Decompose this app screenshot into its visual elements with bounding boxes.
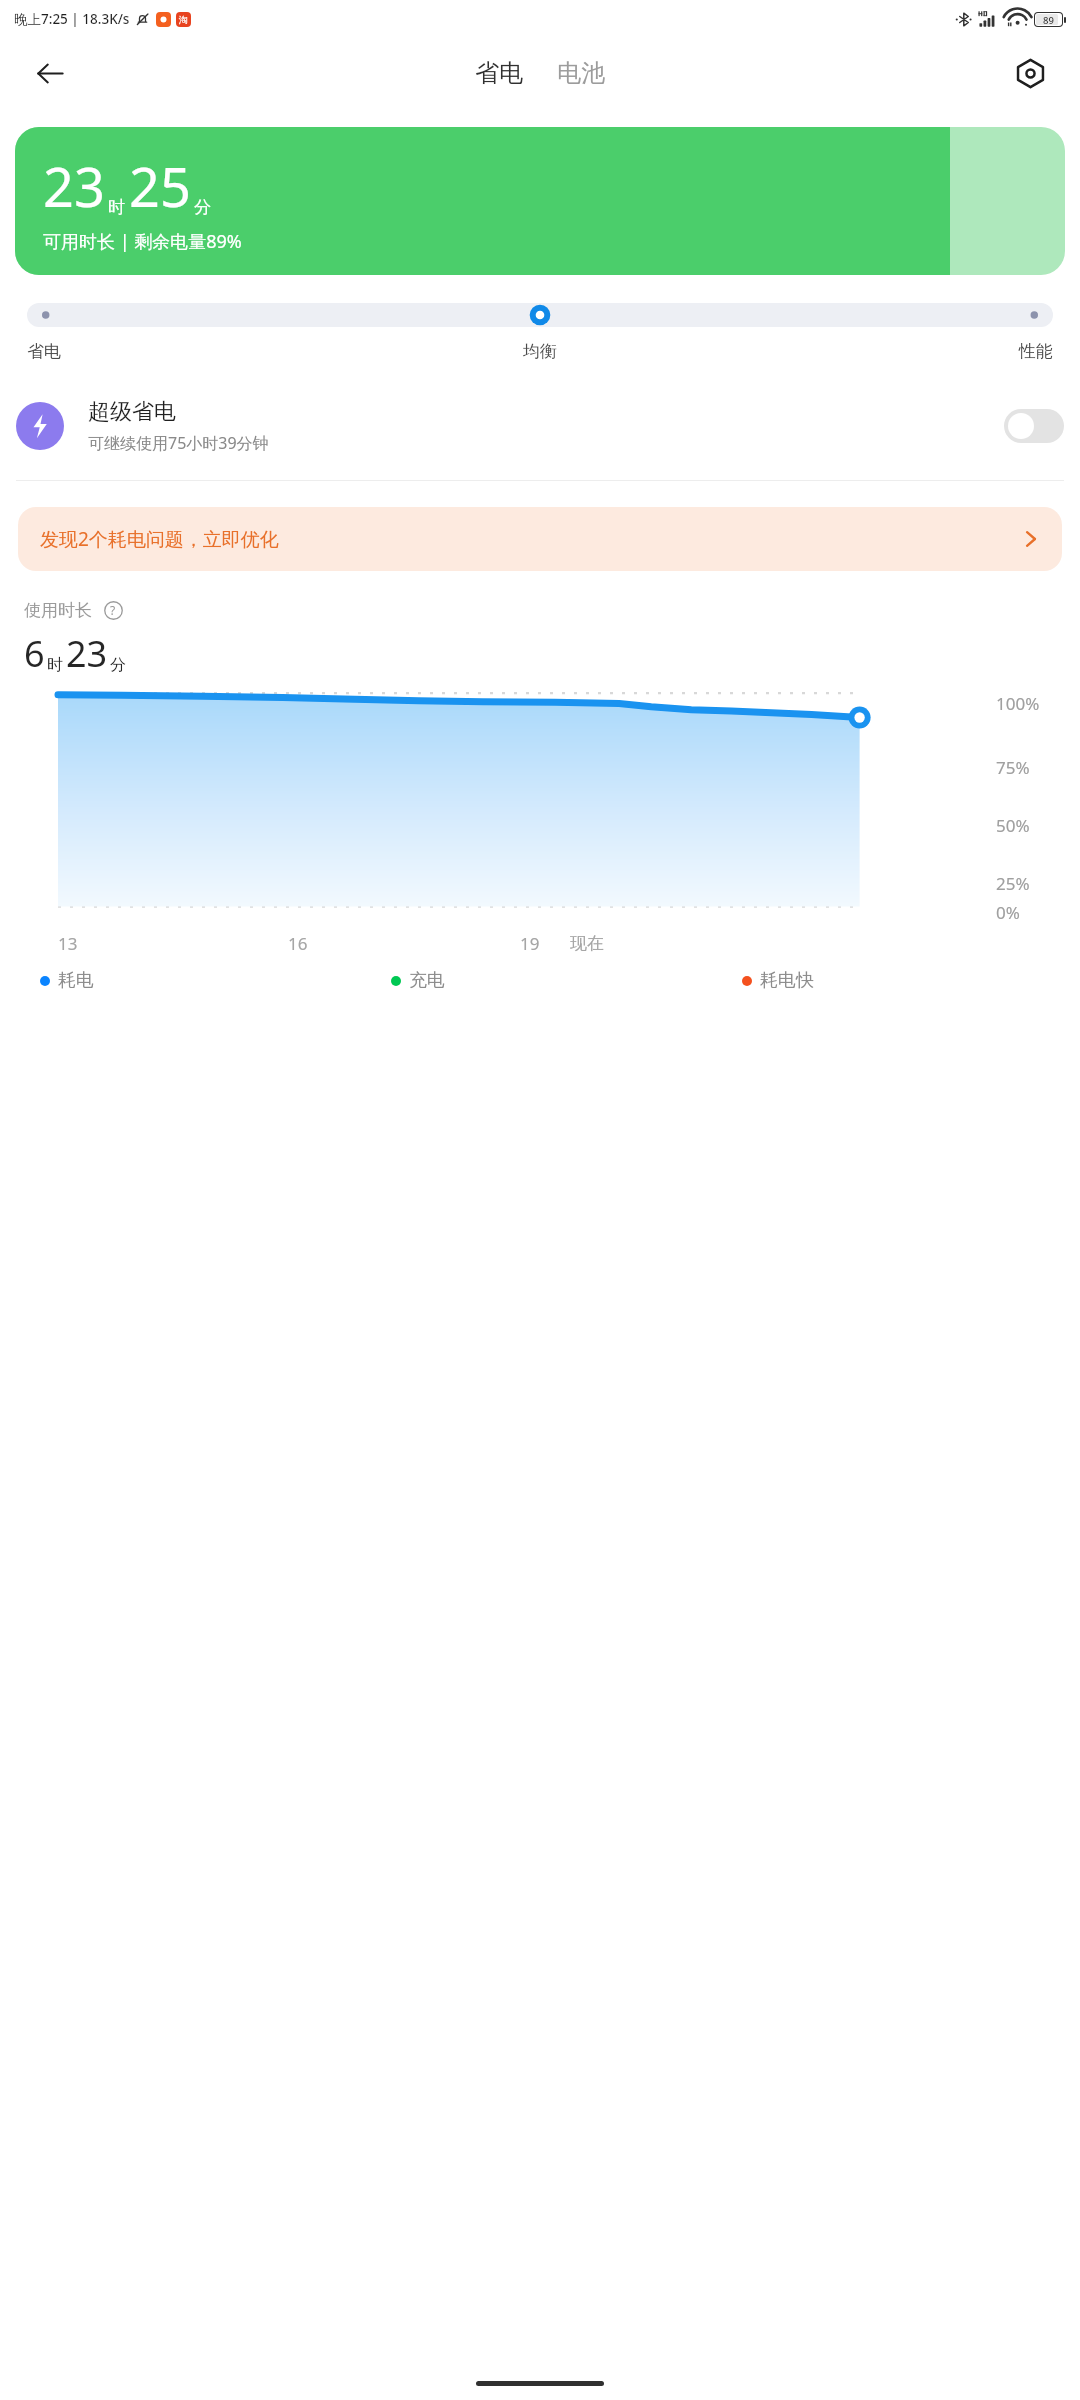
button[interactable]: Back	[24, 47, 76, 99]
staticText: 性能	[711, 341, 1053, 362]
staticText: 时	[108, 197, 125, 218]
staticText: 使用时长	[24, 600, 92, 621]
staticText: ?	[110, 602, 116, 618]
button[interactable]: 电池	[551, 54, 611, 92]
staticText: 充电	[409, 969, 445, 992]
staticText: 发现2个耗电问题，立即优化	[40, 526, 1022, 552]
staticText: 23	[66, 629, 108, 678]
staticText: 89	[1043, 14, 1054, 25]
staticText: 100%	[996, 692, 1040, 715]
button[interactable]: Settings	[1004, 47, 1056, 99]
staticText: 19	[520, 932, 540, 955]
staticText: 耗电	[58, 969, 94, 992]
staticText: 耗电快	[760, 969, 814, 992]
staticText: 25	[129, 149, 191, 223]
staticText: 电池	[557, 58, 605, 88]
staticText: 75%	[996, 756, 1030, 779]
staticText: 可继续使用75小时39分钟	[88, 432, 269, 454]
staticText: 超级省电	[88, 398, 176, 426]
staticText: 淘	[179, 14, 188, 25]
button[interactable]: Super power saving toggle	[1004, 409, 1064, 443]
button[interactable]: 省电	[469, 54, 529, 92]
staticText: 23	[43, 149, 105, 223]
staticText: 时	[47, 655, 63, 675]
staticText: 现在	[570, 933, 604, 954]
staticText: 6	[24, 629, 45, 678]
staticText: 可用时长 | 剩余电量89%	[43, 229, 242, 254]
staticText: 省电	[27, 341, 369, 362]
staticText: 省电	[475, 58, 523, 88]
staticText: 50%	[996, 814, 1030, 837]
button[interactable]: 充电	[391, 969, 742, 992]
button[interactable]: 耗电	[40, 969, 391, 992]
button[interactable]: 耗电快	[742, 969, 1040, 992]
staticText: 0%	[996, 901, 1020, 924]
staticText: 25%	[996, 872, 1030, 895]
staticText: 16	[288, 932, 308, 955]
staticText: 分	[110, 655, 126, 675]
staticText: 晚上7:25 | 18.3K/s	[14, 10, 130, 28]
button[interactable]	[27, 303, 1053, 327]
staticText: 均衡	[369, 341, 711, 362]
staticText: 分	[194, 197, 211, 218]
button[interactable]: 23	[15, 127, 1065, 275]
button[interactable]: 超级省电	[0, 392, 1080, 460]
button[interactable]: 发现2个耗电问题，立即优化	[18, 507, 1062, 571]
button[interactable]: Help	[100, 597, 126, 623]
staticText: 13	[58, 932, 78, 955]
